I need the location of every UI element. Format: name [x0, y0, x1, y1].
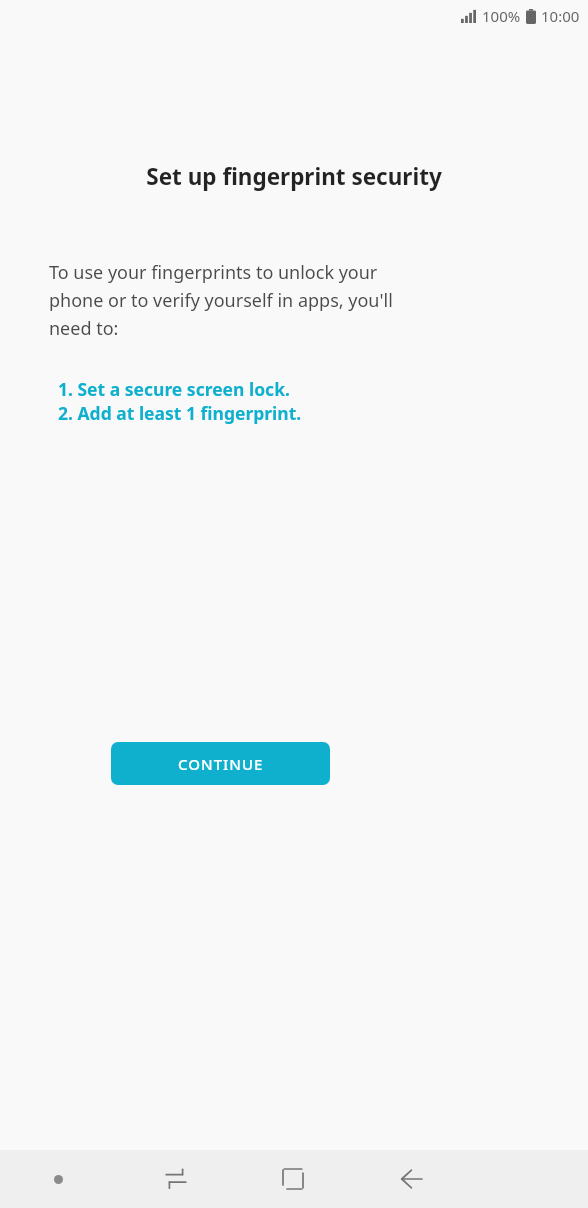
staticText: 1. Set a secure screen lock. — [58, 377, 290, 401]
staticText: 2. Add at least 1 fingerprint. — [58, 401, 302, 425]
staticText: To use your fingerprints to unlock your … — [49, 260, 394, 341]
staticText: 100% — [482, 6, 521, 26]
staticText: 10:00 — [541, 6, 580, 26]
staticText: CONTINUE — [178, 754, 264, 774]
button[interactable]: Home — [234, 1150, 352, 1208]
button[interactable]: Recent apps — [117, 1150, 234, 1208]
button[interactable]: CONTINUE — [111, 742, 330, 785]
button[interactable]: Back — [352, 1150, 470, 1208]
staticText: Set up fingerprint security — [0, 161, 588, 192]
